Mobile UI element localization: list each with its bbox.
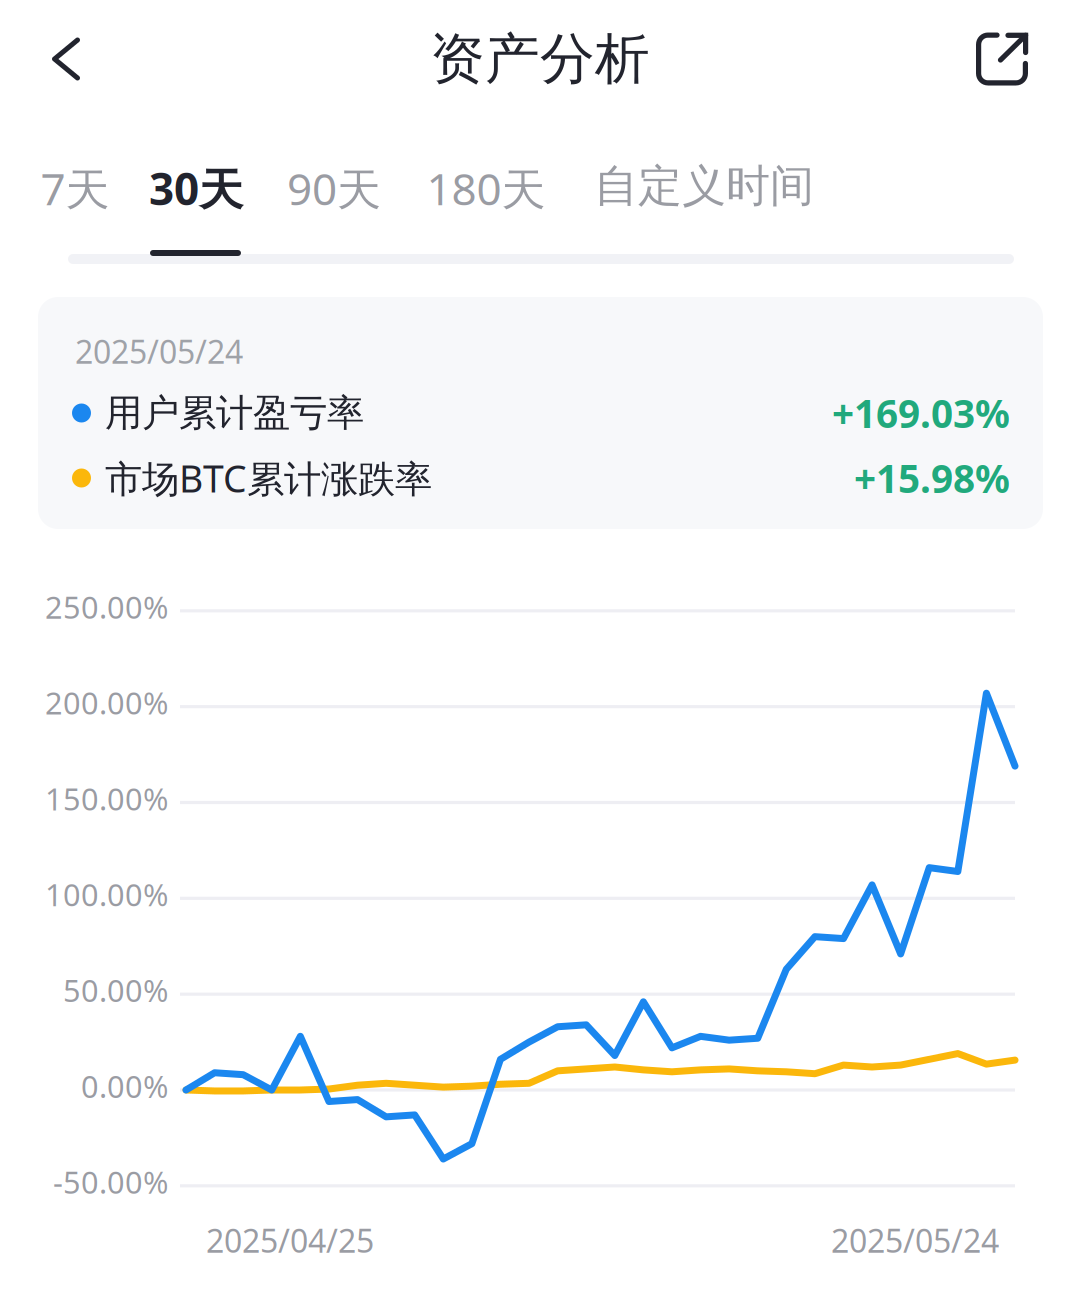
staticText: 资产分析 (430, 25, 650, 92)
staticText: 市场BTC累计涨跌率 (105, 453, 432, 503)
button[interactable]: 自定义时间 (589, 159, 819, 263)
staticText: 180天 (426, 159, 545, 217)
button[interactable]: 90天 (282, 159, 386, 263)
staticText: 0.00% (81, 1066, 168, 1106)
staticText: 90天 (287, 159, 381, 217)
staticText: +15.98% (854, 452, 1010, 504)
staticText: 200.00% (45, 682, 168, 723)
button[interactable]: Back (13, 0, 119, 118)
button[interactable]: 180天 (422, 159, 550, 263)
staticText: 250.00% (45, 586, 168, 627)
staticText: 自定义时间 (594, 159, 814, 213)
staticText: 2025/05/24 (75, 330, 243, 372)
staticText: 7天 (40, 159, 109, 217)
staticText: 100.00% (45, 874, 168, 915)
button[interactable]: 30天 (144, 159, 248, 263)
staticText: -50.00% (53, 1161, 168, 1202)
staticText: 2025/05/24 (831, 1219, 999, 1261)
button[interactable]: 7天 (30, 159, 120, 263)
staticText: 用户累计盈亏率 (105, 390, 364, 436)
staticText: 150.00% (45, 778, 168, 819)
staticText: +169.03% (832, 387, 1010, 439)
staticText: 2025/04/25 (206, 1219, 374, 1261)
button[interactable]: Share (949, 0, 1055, 118)
staticText: 50.00% (63, 970, 168, 1010)
staticText: 30天 (149, 159, 243, 217)
